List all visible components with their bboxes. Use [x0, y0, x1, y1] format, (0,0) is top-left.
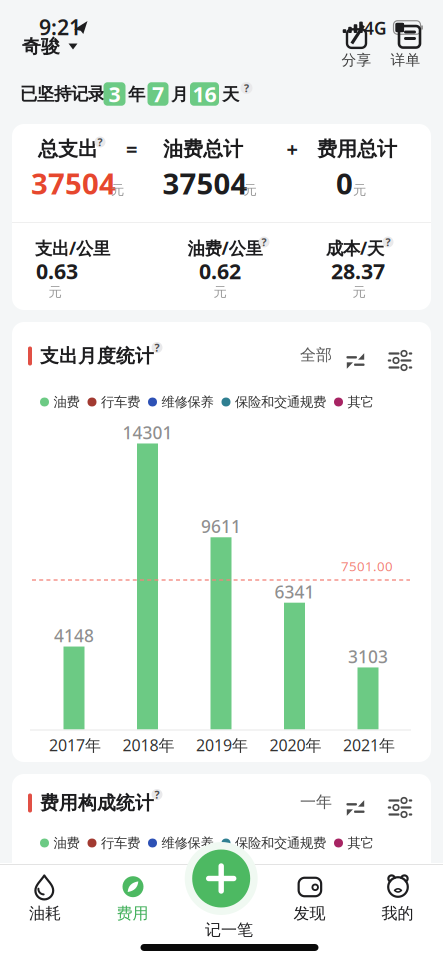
- button[interactable]: 全部: [297, 341, 371, 375]
- staticText: 费用构成统计: [40, 791, 154, 814]
- button[interactable]: [192, 849, 250, 907]
- staticText: 一年: [300, 792, 332, 812]
- staticText: 总支出: [38, 137, 98, 161]
- staticText: 维修保养: [161, 835, 213, 851]
- staticText: 37504: [162, 163, 247, 202]
- staticText: 全部: [300, 345, 332, 365]
- staticText: ?: [154, 340, 159, 355]
- staticText: 油耗: [29, 904, 61, 923]
- staticText: =: [126, 136, 137, 162]
- staticText: 6341: [274, 580, 314, 603]
- staticText: 行车费: [101, 835, 140, 851]
- button[interactable]: 一年: [297, 788, 371, 822]
- staticText: 0.63: [36, 257, 78, 285]
- staticText: +: [286, 136, 297, 162]
- staticText: 保险和交通规费: [235, 394, 326, 410]
- staticText: 支出月度统计: [40, 344, 154, 367]
- staticText: 16: [192, 80, 216, 108]
- staticText: 0.62: [199, 257, 241, 285]
- button[interactable]: 记一笔: [199, 921, 259, 939]
- staticText: 记一笔: [205, 920, 253, 940]
- staticText: 28.37: [331, 257, 385, 285]
- staticText: ?: [385, 235, 390, 249]
- staticText: 2019年: [196, 734, 248, 756]
- staticText: 分享: [341, 51, 371, 69]
- button[interactable]: ?: [151, 789, 162, 800]
- staticText: 我的: [381, 904, 413, 923]
- staticText: 2018年: [122, 734, 174, 756]
- staticText: 费用: [116, 904, 148, 923]
- staticText: ?: [154, 787, 159, 802]
- staticText: 其它: [347, 394, 373, 410]
- staticText: ?: [261, 235, 266, 249]
- staticText: 元: [353, 182, 366, 198]
- staticText: ?: [244, 81, 249, 95]
- staticText: 保险和交通规费: [235, 835, 326, 851]
- staticText: 0: [336, 163, 353, 202]
- button[interactable]: 费用: [97, 864, 167, 922]
- button[interactable]: [382, 341, 416, 375]
- button[interactable]: ?: [258, 236, 269, 247]
- staticText: 2020年: [269, 734, 321, 756]
- staticText: 详单: [390, 51, 420, 69]
- staticText: 油费总计: [163, 137, 243, 161]
- staticText: 元: [48, 284, 61, 300]
- staticText: 月: [171, 84, 188, 105]
- staticText: 年: [128, 84, 145, 105]
- button[interactable]: ?: [240, 82, 252, 94]
- staticText: 奇骏: [22, 35, 60, 58]
- button[interactable]: 奇骏: [16, 26, 106, 66]
- button[interactable]: 发现: [274, 864, 344, 922]
- staticText: 7: [152, 80, 164, 108]
- staticText: ?: [97, 135, 102, 149]
- staticText: 支出/公里: [35, 236, 110, 259]
- staticText: 费用总计: [317, 137, 397, 161]
- staticText: 其它: [347, 835, 373, 851]
- staticText: 7501.00: [341, 557, 393, 575]
- staticText: 2017年: [49, 734, 101, 756]
- staticText: 油费/公里: [187, 236, 262, 259]
- button[interactable]: 分享: [334, 20, 378, 70]
- staticText: 元: [352, 284, 365, 300]
- button[interactable]: ?: [382, 236, 393, 247]
- staticText: 成本/天: [326, 236, 384, 259]
- staticText: 行车费: [101, 394, 140, 410]
- button[interactable]: 我的: [362, 864, 432, 922]
- button[interactable]: ?: [94, 136, 105, 147]
- staticText: 元: [111, 182, 124, 198]
- staticText: 3: [108, 80, 120, 108]
- staticText: 油费: [53, 835, 79, 851]
- staticText: 已坚持记录: [20, 83, 105, 105]
- staticText: 4G: [364, 16, 387, 39]
- staticText: 9:21: [39, 13, 81, 41]
- button[interactable]: 详单: [384, 20, 428, 70]
- staticText: 14301: [122, 421, 172, 444]
- staticText: 油费: [53, 394, 79, 410]
- button[interactable]: ?: [151, 342, 162, 353]
- staticText: 37504: [31, 163, 116, 202]
- staticText: 4148: [54, 624, 94, 647]
- staticText: 元: [243, 182, 256, 198]
- staticText: 9611: [201, 515, 241, 538]
- staticText: 发现: [293, 904, 325, 923]
- button[interactable]: 油耗: [10, 864, 80, 922]
- staticText: 维修保养: [161, 394, 213, 410]
- staticText: 2021年: [343, 734, 395, 756]
- staticText: 元: [213, 284, 226, 300]
- staticText: 3103: [348, 645, 388, 668]
- button[interactable]: [382, 788, 416, 822]
- staticText: 天: [222, 84, 239, 105]
